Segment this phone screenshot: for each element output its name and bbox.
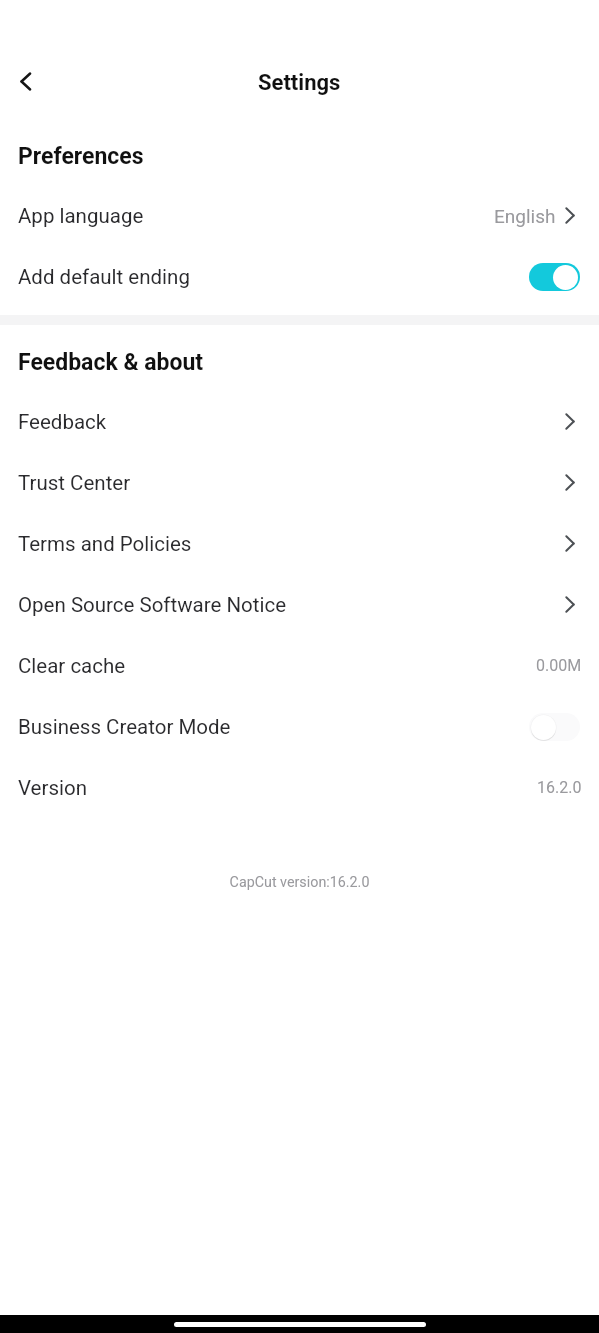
staticText: App language [18, 204, 144, 228]
staticText: Add default ending [18, 265, 190, 289]
button[interactable]: Toggle off [529, 713, 580, 741]
staticText: Clear cache [18, 654, 126, 678]
button[interactable]: Toggle on [529, 263, 580, 291]
button[interactable]: Feedback [0, 391, 599, 452]
staticText: Version [18, 776, 88, 800]
staticText: Feedback & about [18, 349, 204, 376]
button[interactable]: Version [0, 757, 599, 818]
staticText: Settings [258, 70, 341, 96]
staticText: CapCut version:16.2.0 [0, 874, 599, 891]
staticText: Feedback [18, 410, 107, 434]
staticText: Terms and Policies [18, 532, 192, 556]
button[interactable]: Business Creator Mode [0, 696, 599, 757]
button[interactable]: App language [0, 185, 599, 246]
staticText: 16.2.0 [537, 778, 582, 797]
staticText: Preferences [18, 143, 144, 170]
button[interactable]: Trust Center [0, 452, 599, 513]
button[interactable]: Add default ending [0, 246, 599, 307]
staticText: Trust Center [18, 471, 131, 495]
staticText: English [494, 205, 556, 227]
button[interactable]: Clear cache [0, 635, 599, 696]
button[interactable]: Open Source Software Notice [0, 574, 599, 635]
button[interactable]: Back [2, 58, 48, 104]
button[interactable]: Terms and Policies [0, 513, 599, 574]
staticText: 0.00M [536, 656, 582, 675]
staticText: Open Source Software Notice [18, 593, 287, 617]
staticText: Business Creator Mode [18, 715, 231, 739]
